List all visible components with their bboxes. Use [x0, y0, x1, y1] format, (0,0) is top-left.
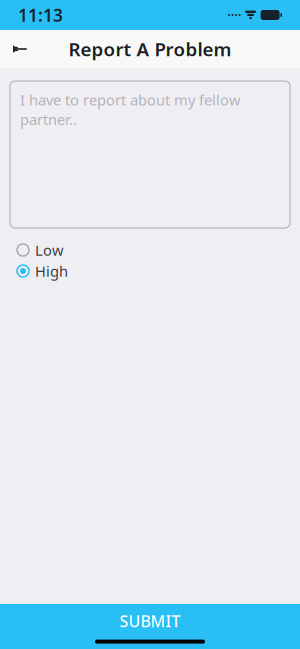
button[interactable]: SUBMIT — [0, 604, 300, 649]
button[interactable]: Low — [16, 242, 300, 258]
button[interactable]: Back — [0, 30, 40, 68]
staticText: High — [35, 261, 68, 281]
button[interactable]: High — [16, 263, 300, 279]
staticText: Low — [35, 240, 64, 260]
staticText: Report A Problem — [68, 37, 231, 61]
staticText: SUBMIT — [119, 610, 180, 632]
staticText: I have to report about my fellow partner… — [20, 90, 241, 129]
staticText: 11:13 — [18, 3, 63, 26]
